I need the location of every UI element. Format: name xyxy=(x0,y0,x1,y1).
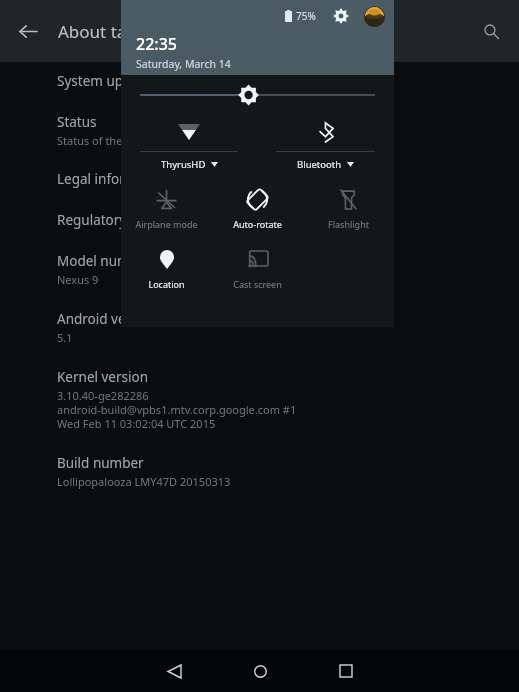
button[interactable]: System updates xyxy=(57,72,519,90)
button[interactable]: Cast screen xyxy=(212,235,303,295)
staticText: Regulatory information xyxy=(57,211,206,229)
staticText: Model number xyxy=(57,252,152,270)
button[interactable]: Model number xyxy=(57,252,519,287)
staticText: ThyrusHD xyxy=(161,158,206,171)
staticText: Lollipopalooza LMY47D 20150313 xyxy=(57,474,231,489)
staticText: Kernel version xyxy=(57,368,149,386)
staticText: Auto-rotate xyxy=(233,218,282,230)
staticText: 22:35 xyxy=(136,33,177,55)
staticText: About tablet xyxy=(58,20,157,43)
staticText: System updates xyxy=(57,72,158,90)
button[interactable]: Wi-Fi xyxy=(121,114,257,175)
button[interactable]: Location xyxy=(121,235,212,295)
staticText: Saturday, March 14 xyxy=(136,57,231,71)
staticText: 75% xyxy=(296,9,316,23)
staticText: Build number xyxy=(57,454,144,472)
button[interactable]: Search xyxy=(469,9,513,53)
button[interactable]: Open settings xyxy=(329,4,353,28)
button[interactable]: Legal information xyxy=(57,170,519,188)
staticText: Status of the battery, network, and othe… xyxy=(57,133,332,148)
staticText: Nexus 9 xyxy=(57,272,99,287)
button[interactable]: Brightness xyxy=(140,82,375,108)
button[interactable]: Home xyxy=(229,650,291,692)
staticText: Bluetooth xyxy=(297,158,342,171)
button[interactable]: Auto-rotate xyxy=(212,175,303,235)
button[interactable]: Back xyxy=(143,650,205,692)
staticText: Cast screen xyxy=(233,278,282,290)
button[interactable]: Android version xyxy=(57,310,519,345)
button[interactable]: Bluetooth xyxy=(257,114,394,175)
button[interactable]: Regulatory information xyxy=(57,211,519,229)
staticText: 5.1 xyxy=(57,330,73,345)
staticText: Status xyxy=(57,113,97,131)
button[interactable]: Build number xyxy=(57,454,519,489)
staticText: 3.10.40-ge282286 android-build@vpbs1.mtv… xyxy=(57,388,297,431)
staticText: Legal information xyxy=(57,170,170,188)
staticText: Android version xyxy=(57,310,158,328)
button[interactable]: Recent apps xyxy=(315,650,377,692)
button[interactable]: Status xyxy=(57,113,519,148)
button[interactable]: Navigate up xyxy=(6,9,50,53)
staticText: Flashlight xyxy=(328,218,369,230)
staticText: Location xyxy=(148,278,185,290)
staticText: Airplane mode xyxy=(135,218,198,230)
button[interactable]: Kernel version xyxy=(57,368,519,431)
button[interactable]: Airplane mode xyxy=(121,175,212,235)
button[interactable]: User profile xyxy=(364,6,385,27)
button[interactable]: Flashlight xyxy=(303,175,394,235)
